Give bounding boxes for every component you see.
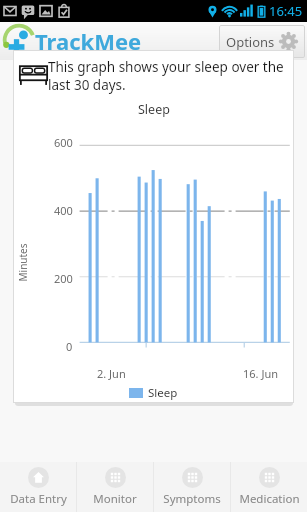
staticText: 400 — [54, 203, 73, 218]
staticText: Data Entry — [10, 491, 67, 507]
staticText: 16:45 — [269, 2, 303, 20]
staticText: Sleep — [148, 385, 178, 401]
button[interactable]: Sleep — [129, 385, 178, 401]
button[interactable]: Symptoms — [154, 462, 230, 512]
staticText: 0 — [66, 339, 73, 354]
staticText: Sleep — [138, 101, 170, 118]
staticText: Monitor — [93, 491, 137, 507]
staticText: Medication — [239, 491, 300, 507]
staticText: 2. Jun — [97, 366, 126, 381]
button[interactable]: Data Entry — [0, 462, 76, 512]
other: Settings — [279, 32, 298, 51]
staticText: 16. Jun — [243, 366, 278, 381]
staticText: 200 — [54, 271, 73, 286]
staticText: TrackMee — [35, 26, 142, 56]
button[interactable]: Medication — [231, 462, 307, 512]
button[interactable]: Options — [219, 25, 305, 58]
staticText: Options — [226, 33, 275, 51]
staticText: 600 — [54, 135, 73, 150]
staticText: Minutes — [15, 242, 29, 281]
staticText: This graph shows your sleep over the las… — [48, 58, 288, 94]
staticText: Symptoms — [163, 491, 221, 507]
button[interactable]: Monitor — [77, 462, 153, 512]
